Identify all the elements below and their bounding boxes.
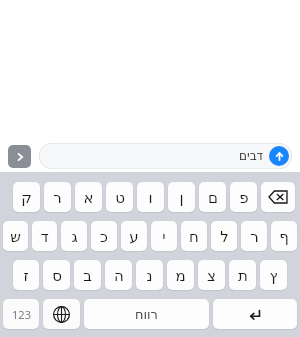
staticText: ן [179, 189, 184, 206]
button[interactable]: רווח [84, 299, 209, 329]
button[interactable]: ע [121, 221, 147, 251]
button[interactable]: ג [61, 221, 87, 251]
staticText: כ [100, 228, 108, 245]
staticText: מ [175, 267, 186, 284]
button[interactable]: Return [213, 299, 297, 329]
button[interactable]: א [75, 182, 102, 212]
staticText: רווח [135, 307, 158, 322]
button[interactable]: ח [181, 221, 207, 251]
button[interactable]: ק [13, 182, 40, 212]
staticText: ת [238, 267, 248, 284]
button[interactable]: ש [3, 221, 28, 251]
button[interactable]: ד [32, 221, 57, 251]
button[interactable]: Backspace [261, 182, 295, 212]
button[interactable]: ף [271, 221, 297, 251]
button[interactable]: ר [241, 221, 267, 251]
staticText: ע [129, 228, 139, 245]
button[interactable]: פ [230, 182, 257, 212]
staticText: ץ [269, 267, 278, 284]
button[interactable]: ו [137, 182, 164, 212]
staticText: ס [52, 267, 62, 284]
staticText: י [162, 228, 166, 245]
staticText: ט [115, 189, 125, 206]
staticText: 123 [12, 307, 31, 322]
staticText: ל [220, 228, 229, 245]
button[interactable]: נ [136, 260, 163, 290]
staticText: ו [148, 189, 153, 206]
button[interactable]: Send [269, 146, 289, 166]
staticText: ר [53, 189, 62, 206]
staticText: פ [239, 189, 249, 206]
staticText: ר [250, 228, 259, 245]
button[interactable]: י [151, 221, 177, 251]
button[interactable]: Change keyboard [43, 299, 80, 329]
staticText: ף [279, 228, 289, 245]
button[interactable]: ל [211, 221, 237, 251]
button[interactable]: ב [74, 260, 101, 290]
button[interactable]: Expand [8, 145, 31, 168]
button[interactable]: דבים [39, 143, 292, 169]
staticText: ז [23, 267, 29, 284]
staticText: ק [21, 189, 32, 206]
staticText: ח [189, 228, 199, 245]
staticText: נ [146, 267, 153, 284]
staticText: א [83, 189, 94, 206]
button[interactable]: ם [199, 182, 226, 212]
button[interactable]: ט [106, 182, 133, 212]
button[interactable]: כ [91, 221, 117, 251]
button[interactable]: צ [198, 260, 225, 290]
staticText: צ [207, 267, 216, 284]
button[interactable]: מ [167, 260, 194, 290]
button[interactable]: ה [105, 260, 132, 290]
button[interactable]: ת [229, 260, 256, 290]
staticText: ם [208, 189, 218, 206]
button[interactable]: ץ [260, 260, 287, 290]
button[interactable]: 123 [3, 299, 39, 329]
staticText: דבים [239, 149, 264, 163]
staticText: ד [40, 228, 49, 245]
button[interactable]: ן [168, 182, 195, 212]
staticText: ש [10, 228, 21, 245]
staticText: ב [83, 267, 92, 284]
staticText: ה [114, 267, 124, 284]
button[interactable]: ז [13, 260, 39, 290]
button[interactable]: ס [43, 260, 70, 290]
button[interactable]: ר [44, 182, 71, 212]
staticText: ג [71, 228, 78, 245]
